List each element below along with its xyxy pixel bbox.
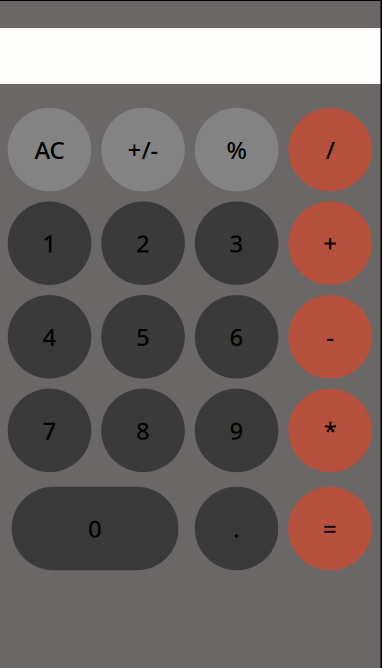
staticText: 9 — [230, 414, 244, 446]
staticText: - — [326, 321, 334, 353]
button[interactable]: 6 — [195, 295, 278, 379]
staticText: = — [323, 513, 337, 544]
staticText: AC — [34, 134, 64, 166]
staticText: 4 — [42, 321, 56, 353]
button[interactable]: 0 — [12, 487, 179, 570]
staticText: * — [324, 414, 337, 446]
button[interactable]: / — [288, 108, 372, 191]
staticText: 5 — [136, 321, 150, 353]
button[interactable]: AC — [8, 108, 91, 191]
button[interactable]: 8 — [101, 389, 185, 472]
staticText: +/- — [127, 134, 158, 166]
staticText: 3 — [230, 227, 244, 259]
button[interactable]: 3 — [195, 201, 278, 285]
staticText: . — [233, 513, 240, 544]
button[interactable]: - — [288, 295, 372, 379]
button[interactable]: 2 — [101, 201, 185, 285]
button[interactable]: % — [195, 108, 278, 191]
staticText: 8 — [136, 414, 150, 446]
button[interactable]: 9 — [195, 389, 278, 472]
staticText: 7 — [42, 414, 56, 446]
button[interactable]: . — [195, 487, 278, 570]
staticText: % — [227, 134, 247, 166]
staticText: + — [323, 227, 337, 259]
staticText: / — [326, 134, 335, 166]
button[interactable]: 4 — [8, 295, 91, 379]
button[interactable]: +/- — [101, 108, 185, 191]
button[interactable]: + — [288, 201, 372, 285]
button[interactable]: 5 — [101, 295, 185, 379]
button[interactable]: 7 — [8, 389, 91, 472]
button[interactable]: = — [288, 487, 372, 570]
button[interactable]: * — [288, 389, 372, 472]
staticText: 6 — [230, 321, 244, 353]
button[interactable]: 1 — [8, 201, 91, 285]
staticText: 1 — [42, 227, 56, 259]
staticText: 0 — [88, 513, 102, 544]
staticText: 2 — [136, 227, 150, 259]
